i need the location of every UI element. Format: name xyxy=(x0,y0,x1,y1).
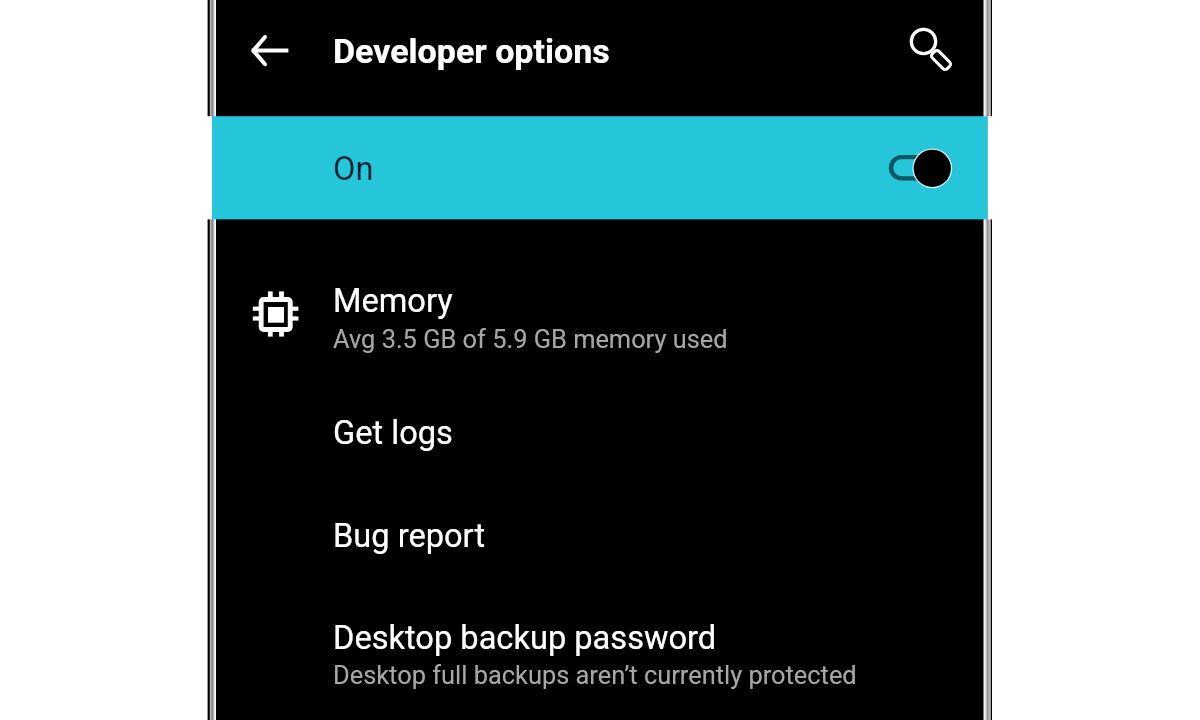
staticText: Get logs xyxy=(333,414,453,452)
staticText: On xyxy=(333,150,374,188)
button[interactable]: Navigate up xyxy=(236,22,294,80)
staticText: Desktop backup password xyxy=(333,619,717,657)
staticText: Avg 3.5 GB of 5.9 GB memory used xyxy=(333,324,728,354)
staticText: Bug report xyxy=(333,517,486,555)
button[interactable]: Search xyxy=(900,18,952,70)
staticText: Desktop full backups aren’t currently pr… xyxy=(333,660,857,690)
button[interactable]: On xyxy=(212,116,988,219)
staticText: Developer options xyxy=(333,31,610,71)
button[interactable]: Get logs xyxy=(216,395,984,460)
button[interactable]: Memory xyxy=(216,262,984,362)
button[interactable]: Bug report xyxy=(216,498,984,563)
button[interactable]: Desktop backup password xyxy=(216,600,984,700)
staticText: Memory xyxy=(333,282,453,320)
